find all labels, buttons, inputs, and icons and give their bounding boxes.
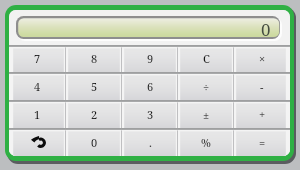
button[interactable]: ÷ xyxy=(178,72,234,100)
button[interactable]: 6 xyxy=(122,72,178,100)
staticText: % xyxy=(201,135,211,150)
button[interactable]: 5 xyxy=(66,72,122,100)
staticText: 9 xyxy=(147,51,154,66)
button[interactable]: + xyxy=(234,100,290,128)
staticText: + xyxy=(259,107,266,122)
button[interactable]: . xyxy=(122,128,178,156)
staticText: 3 xyxy=(147,107,154,122)
button[interactable]: Undo xyxy=(9,128,66,156)
staticText: 4 xyxy=(34,79,41,94)
button[interactable]: × xyxy=(234,45,290,72)
button[interactable]: 2 xyxy=(66,100,122,128)
staticText: ÷ xyxy=(203,79,210,94)
staticText: 2 xyxy=(91,107,98,122)
staticText: 5 xyxy=(91,79,98,94)
button[interactable]: 8 xyxy=(66,45,122,72)
staticText: 1 xyxy=(34,107,41,122)
staticText: 0 xyxy=(261,18,271,41)
button[interactable]: C xyxy=(178,45,234,72)
staticText: 0 xyxy=(91,135,98,150)
staticText: - xyxy=(260,79,264,94)
staticText: C xyxy=(203,51,210,66)
staticText: 8 xyxy=(91,51,98,66)
button[interactable]: 9 xyxy=(122,45,178,72)
staticText: = xyxy=(259,135,266,150)
button[interactable]: - xyxy=(234,72,290,100)
button[interactable]: ± xyxy=(178,100,234,128)
button[interactable]: = xyxy=(234,128,290,156)
button[interactable]: 4 xyxy=(9,72,66,100)
button[interactable]: % xyxy=(178,128,234,156)
button[interactable]: 1 xyxy=(9,100,66,128)
staticText: ± xyxy=(203,107,210,122)
staticText: 7 xyxy=(34,51,41,66)
staticText: × xyxy=(259,51,266,66)
staticText: 6 xyxy=(147,79,154,94)
other: Undo xyxy=(31,136,45,148)
staticText: . xyxy=(149,135,152,150)
button[interactable]: 0 xyxy=(66,128,122,156)
button[interactable]: 7 xyxy=(9,45,66,72)
button[interactable]: 3 xyxy=(122,100,178,128)
